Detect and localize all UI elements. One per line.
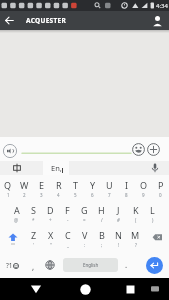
staticText: ; xyxy=(101,242,103,248)
button[interactable] xyxy=(3,144,17,158)
staticText: = xyxy=(83,217,86,223)
staticText: E xyxy=(39,179,45,191)
button[interactable] xyxy=(132,143,145,156)
staticText: U xyxy=(106,179,113,191)
button[interactable]: I xyxy=(118,177,135,202)
staticText: 0 xyxy=(159,192,162,198)
staticText: 1 xyxy=(7,192,10,198)
staticText: ?1 xyxy=(6,261,13,270)
button[interactable]: O xyxy=(135,177,152,202)
button[interactable]: D xyxy=(42,202,59,227)
staticText: 4:34 xyxy=(156,2,168,10)
staticText: ? xyxy=(135,242,137,248)
staticText: Y xyxy=(90,179,96,191)
staticText: @ xyxy=(14,217,19,223)
button[interactable]: J xyxy=(110,202,127,227)
button[interactable]: H xyxy=(93,202,110,227)
staticText: 2 xyxy=(23,192,26,198)
staticText: , xyxy=(32,261,35,272)
button[interactable]: F xyxy=(59,202,76,227)
button[interactable]: A xyxy=(8,202,25,227)
button[interactable]: U xyxy=(101,177,118,202)
staticText: M xyxy=(131,229,140,241)
button[interactable]: B xyxy=(93,227,110,252)
button[interactable]: N xyxy=(110,227,127,252)
button[interactable]: M xyxy=(127,227,144,252)
staticText: I xyxy=(125,179,129,191)
button[interactable] xyxy=(149,283,161,295)
staticText: N xyxy=(115,229,122,241)
button[interactable]: K xyxy=(127,202,144,227)
staticText: P xyxy=(158,179,164,191)
button[interactable]: ?1 xyxy=(0,252,25,278)
staticText: 8 xyxy=(125,192,128,198)
button[interactable]: R xyxy=(50,177,67,202)
staticText: 6 xyxy=(91,192,94,198)
staticText: 3 xyxy=(40,192,43,198)
button[interactable] xyxy=(147,143,160,156)
button[interactable]: L xyxy=(144,202,161,227)
button[interactable] xyxy=(144,227,169,252)
button[interactable] xyxy=(10,161,24,175)
staticText: / xyxy=(101,217,103,223)
staticText: D xyxy=(47,204,54,216)
staticText: Z xyxy=(31,229,37,241)
staticText: B xyxy=(99,229,105,241)
button[interactable]: Z xyxy=(25,227,42,252)
staticText: 7 xyxy=(108,192,111,198)
staticText: Q xyxy=(4,179,12,191)
button[interactable] xyxy=(0,11,19,30)
staticText: ACQUESTER xyxy=(26,16,67,25)
staticText: - xyxy=(67,217,69,223)
staticText: A xyxy=(14,204,20,216)
button[interactable] xyxy=(149,162,161,174)
staticText: G xyxy=(81,204,88,216)
button[interactable]: Q xyxy=(0,177,16,202)
staticText: 9 xyxy=(142,192,145,198)
staticText: . xyxy=(125,259,128,270)
button[interactable]: Y xyxy=(84,177,101,202)
staticText: X xyxy=(48,229,54,241)
staticText: _ xyxy=(67,242,69,248)
button[interactable] xyxy=(27,280,45,298)
staticText: ' xyxy=(33,242,35,248)
button[interactable]: E xyxy=(33,177,50,202)
staticText: J xyxy=(117,204,120,216)
button[interactable]: X xyxy=(42,227,59,252)
staticText: 5 xyxy=(74,192,77,198)
staticText: R xyxy=(56,179,62,191)
button[interactable]: En, xyxy=(43,161,69,175)
staticText: O xyxy=(140,179,148,191)
staticText: F xyxy=(65,204,70,216)
staticText: En, xyxy=(51,163,62,173)
button[interactable] xyxy=(0,227,25,252)
staticText: S xyxy=(31,204,36,216)
staticText: + xyxy=(49,217,52,223)
staticText: C xyxy=(65,229,71,241)
staticText: English xyxy=(83,262,99,268)
button[interactable]: V xyxy=(76,227,93,252)
button[interactable]: P xyxy=(152,177,169,202)
staticText: ( xyxy=(135,217,137,223)
staticText: H xyxy=(98,204,105,216)
button[interactable]: S xyxy=(25,202,42,227)
button[interactable] xyxy=(121,280,139,298)
staticText: W xyxy=(20,179,29,191)
staticText: K xyxy=(133,204,139,216)
button[interactable] xyxy=(149,13,165,29)
staticText: # xyxy=(117,217,120,223)
staticText: ! xyxy=(118,242,120,248)
button[interactable] xyxy=(76,280,94,298)
staticText: T xyxy=(73,179,79,191)
staticText: * xyxy=(32,217,35,223)
button[interactable] xyxy=(44,259,56,271)
button[interactable]: G xyxy=(76,202,93,227)
staticText: " xyxy=(50,242,52,248)
button[interactable]: T xyxy=(67,177,84,202)
staticText: L xyxy=(150,204,155,216)
button[interactable]: English xyxy=(63,258,118,272)
button[interactable]: C xyxy=(59,227,76,252)
button[interactable]: W xyxy=(16,177,33,202)
button[interactable] xyxy=(146,257,163,274)
staticText: ) xyxy=(152,217,154,223)
